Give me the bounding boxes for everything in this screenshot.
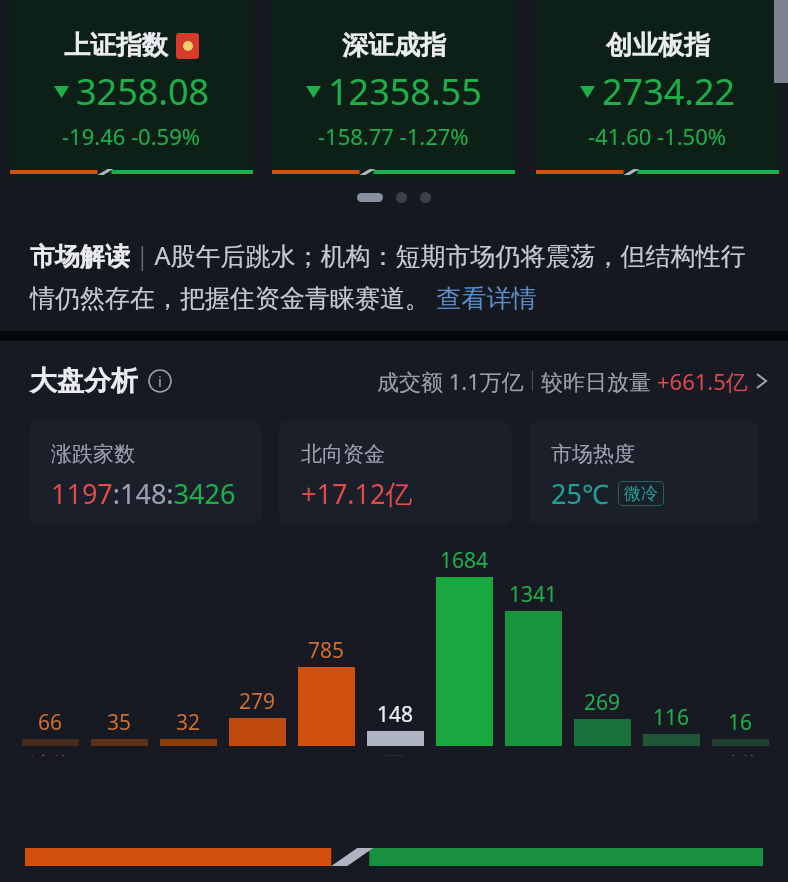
- staticText: 上证指数: [64, 29, 168, 62]
- staticText: 2734.22: [602, 67, 736, 116]
- button[interactable]: 成交额 1.1万亿: [377, 366, 768, 396]
- staticText: 12358.55: [328, 67, 482, 116]
- staticText: 279: [239, 687, 276, 716]
- staticText: -41.60 -1.50%: [588, 121, 727, 151]
- staticText: 平: [385, 752, 406, 756]
- staticText: 269: [584, 688, 621, 717]
- button[interactable]: 市场热度: [529, 421, 759, 524]
- staticText: -19.46 -0.59%: [62, 121, 201, 151]
- staticText: +17.12亿: [301, 475, 413, 512]
- staticText: 116: [653, 703, 690, 732]
- staticText: 大盘分析: [30, 364, 138, 398]
- staticText: 32: [176, 708, 201, 737]
- button[interactable]: 说明: [148, 369, 172, 393]
- staticText: 市场解读｜A股午后跳水；机构：短期市场仍将震荡，但结构性行情仍然存在，把握住资金…: [30, 238, 768, 315]
- staticText: 涨停: [30, 752, 72, 756]
- button[interactable]: 深证成指: [272, 0, 515, 178]
- staticText: 涨跌家数: [51, 441, 135, 467]
- staticText: 深证成指: [342, 29, 446, 62]
- staticText: i: [158, 371, 162, 391]
- staticText: 1197:148:3426: [51, 475, 236, 512]
- staticText: -158.77 -1.27%: [318, 121, 469, 151]
- staticText: 35: [107, 708, 132, 737]
- staticText: 1684: [440, 546, 489, 575]
- staticText: 16: [728, 708, 753, 737]
- staticText: 25℃: [551, 475, 609, 512]
- staticText: 跌停: [719, 752, 761, 756]
- button[interactable]: 涨跌家数: [29, 421, 262, 524]
- staticText: 785: [308, 636, 345, 665]
- button[interactable]: 创业板指: [536, 0, 779, 178]
- button[interactable]: 北向资金: [279, 421, 512, 524]
- staticText: 66: [38, 708, 63, 737]
- staticText: 微冷: [624, 483, 658, 504]
- staticText: 148: [377, 700, 414, 729]
- staticText: 成交额 1.1万亿: [377, 366, 524, 396]
- staticText: 市场热度: [551, 441, 635, 467]
- staticText: +661.5亿: [657, 366, 748, 396]
- button[interactable]: 上证指数: [10, 0, 253, 178]
- staticText: 1341: [509, 580, 558, 609]
- button[interactable]: 市场解读｜A股午后跳水；机构：短期市场仍将震荡，但结构性行情仍然存在，把握住资金…: [0, 216, 788, 331]
- staticText: 北向资金: [301, 441, 385, 467]
- staticText: 3258.08: [76, 67, 210, 116]
- staticText: 创业板指: [606, 29, 710, 62]
- staticText: 较昨日放量: [541, 366, 657, 396]
